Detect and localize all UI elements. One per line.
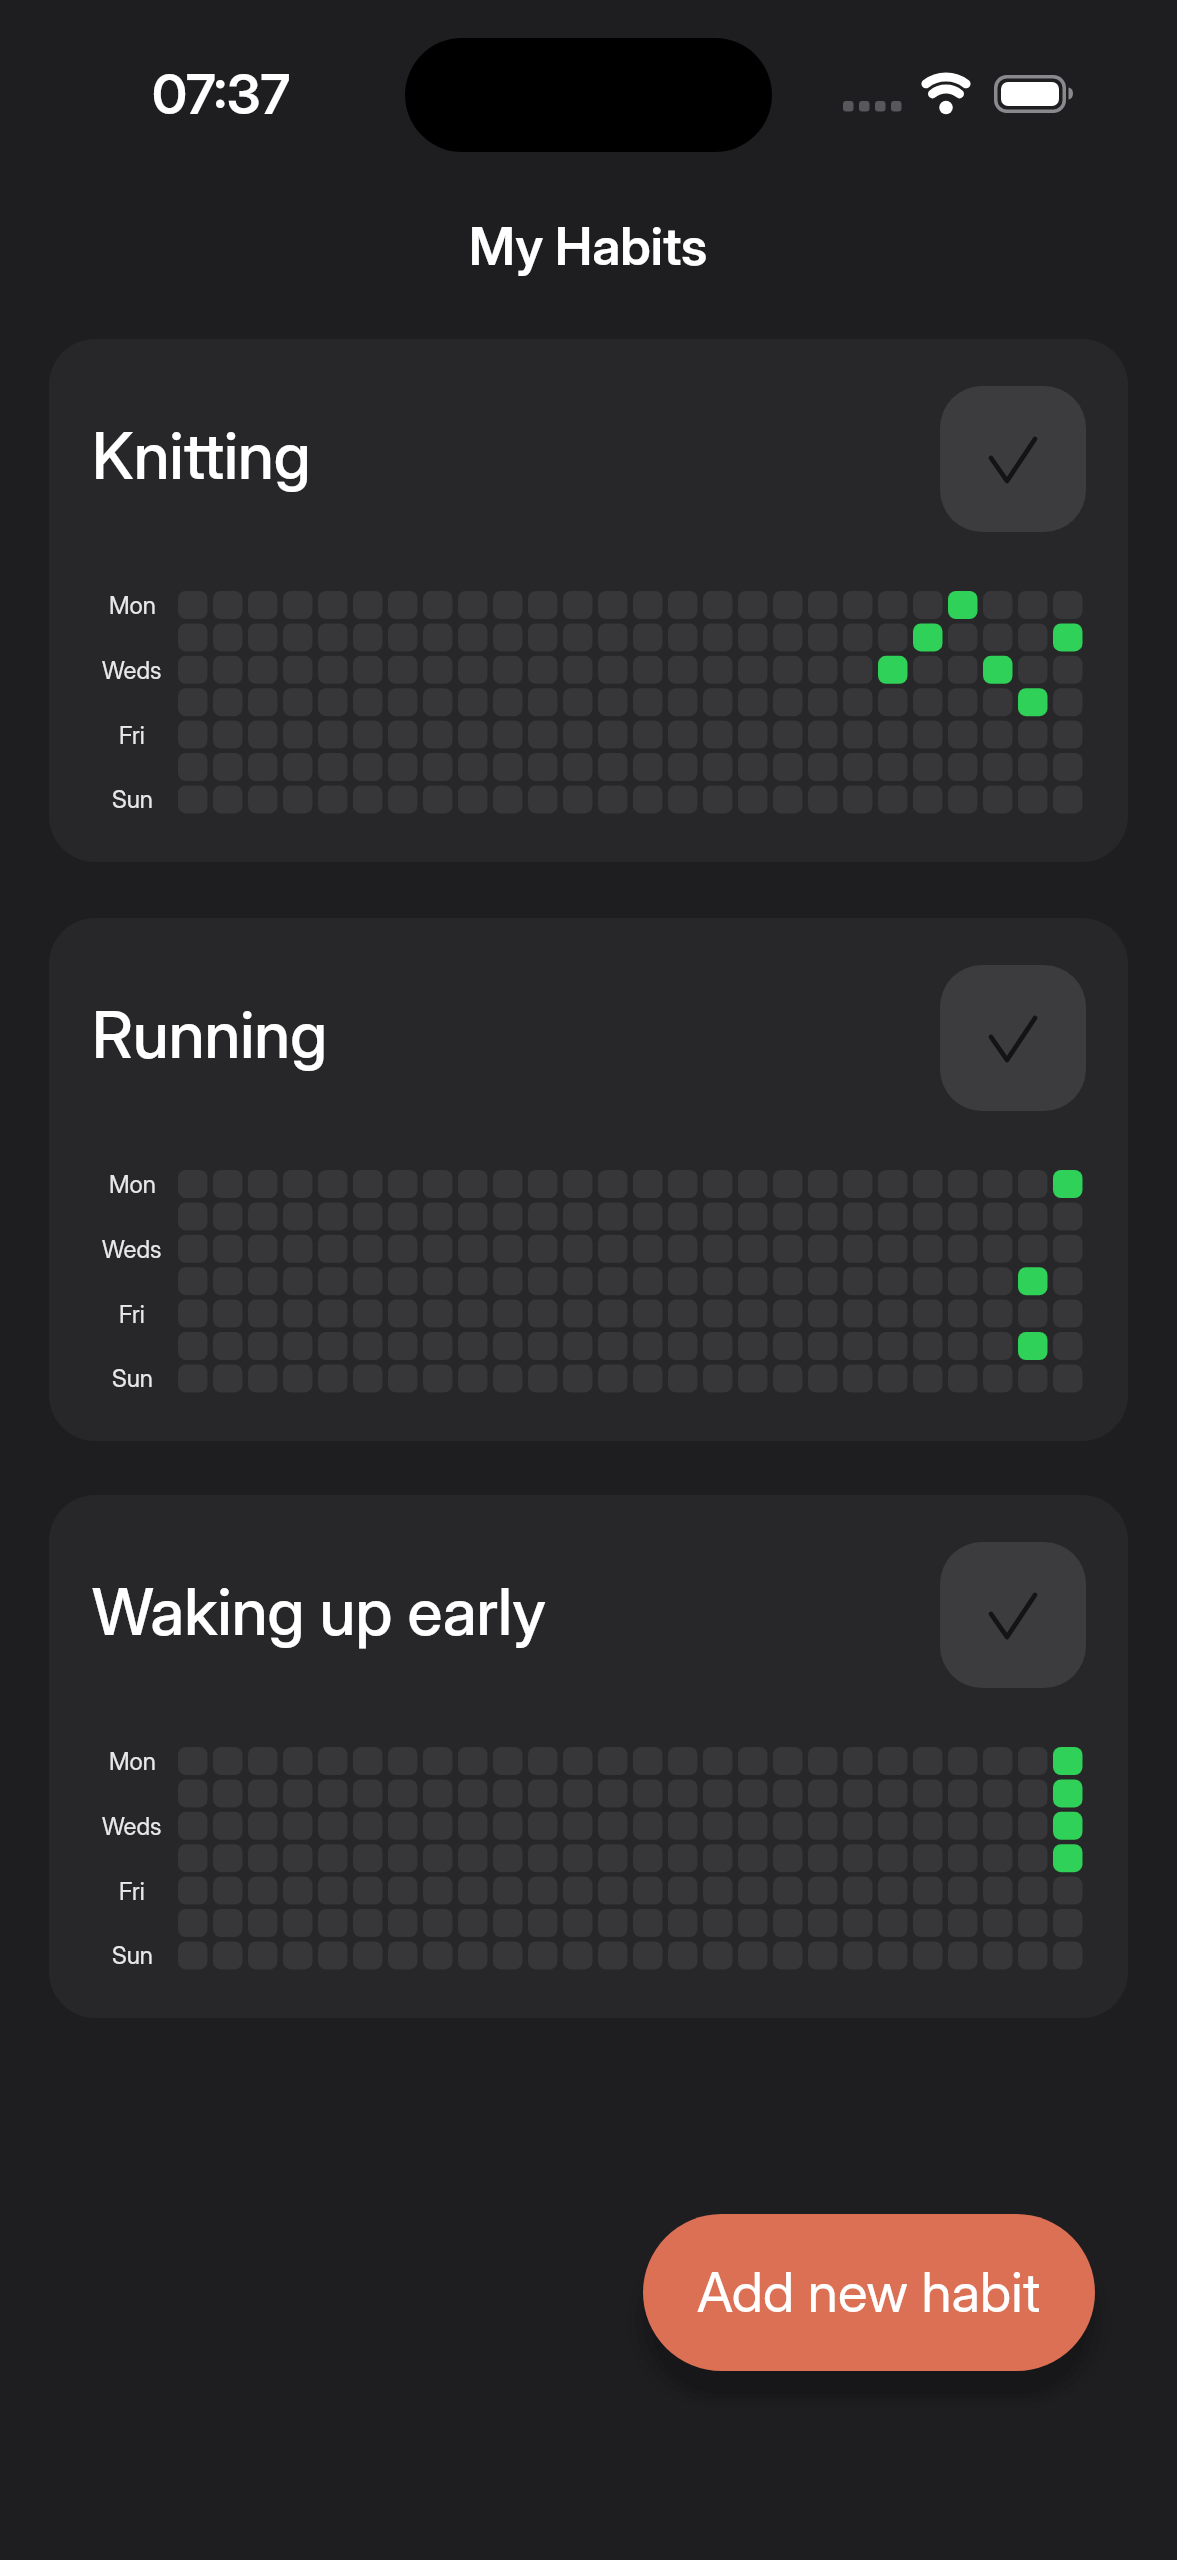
- button[interactable]: [940, 386, 1086, 532]
- staticText: Running: [92, 996, 327, 1073]
- button[interactable]: [940, 965, 1086, 1111]
- staticText: Weds: [102, 1235, 162, 1264]
- staticText: Mon: [109, 1170, 156, 1199]
- button[interactable]: Add new habit: [643, 2214, 1095, 2371]
- button[interactable]: [940, 1542, 1086, 1688]
- staticText: Fri: [119, 1300, 145, 1329]
- staticText: Mon: [109, 591, 156, 620]
- staticText: 07:37: [152, 61, 291, 128]
- staticText: Waking up early: [92, 1573, 546, 1650]
- staticText: Sun: [112, 1941, 153, 1970]
- staticText: Sun: [112, 1364, 153, 1393]
- staticText: Mon: [109, 1747, 156, 1776]
- staticText: Weds: [102, 1812, 162, 1841]
- staticText: Sun: [112, 785, 153, 814]
- staticText: Fri: [119, 721, 145, 750]
- staticText: Knitting: [92, 417, 311, 494]
- staticText: Weds: [102, 656, 162, 685]
- staticText: My Habits: [469, 215, 708, 278]
- staticText: Fri: [119, 1877, 145, 1906]
- staticText: Add new habit: [697, 2259, 1041, 2326]
